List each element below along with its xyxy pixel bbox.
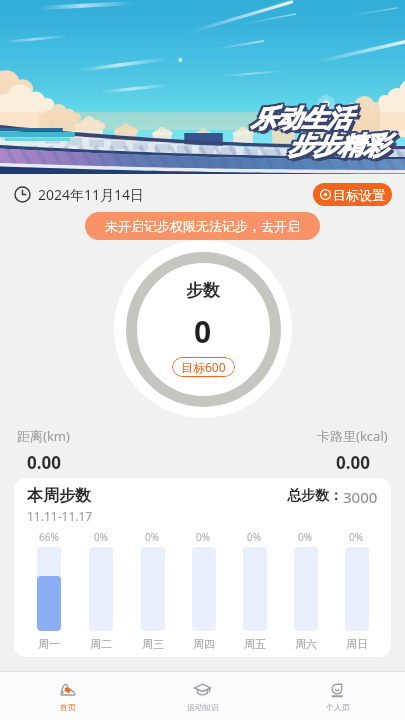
staticText: 周日 [346, 637, 368, 651]
staticText: 0% [349, 530, 364, 544]
staticText: 目标设置 [333, 187, 385, 203]
button[interactable]: 运动知识 [135, 672, 270, 720]
button[interactable]: 目标设置 [313, 183, 392, 206]
staticText: 乐动生活 [253, 106, 353, 137]
button[interactable]: 首页 [0, 672, 135, 720]
staticText: 步数 [186, 280, 220, 301]
staticText: 乐动生活 [249, 105, 349, 136]
staticText: 步步精彩 [290, 133, 390, 164]
staticText: 步步精彩 [286, 128, 386, 159]
staticText: 0% [145, 530, 160, 544]
staticText: 步步精彩 [291, 133, 391, 164]
staticText: 目标600 [181, 359, 226, 375]
button[interactable]: 未开启记步权限无法记步，去开启 [85, 212, 320, 240]
other: 运动知识 [193, 680, 212, 699]
staticText: 周一 [38, 637, 60, 651]
staticText: 周二 [90, 637, 112, 651]
staticText: 乐动生活 [254, 105, 354, 136]
staticText: 步步精彩 [291, 132, 391, 163]
staticText: 本周步数 [27, 486, 91, 506]
button[interactable]: 目标600 [172, 357, 235, 377]
staticText: 首页 [60, 702, 76, 712]
staticText: 乐动生活 [253, 105, 353, 136]
button[interactable]: 个人页 [270, 672, 405, 720]
staticText: 0% [196, 530, 211, 544]
staticText: 步步精彩 [288, 128, 388, 159]
staticText: 未开启记步权限无法记步，去开启 [105, 218, 300, 234]
staticText: 步步精彩 [290, 132, 390, 163]
staticText: 步步精彩 [288, 132, 388, 163]
staticText: 乐动生活 [251, 105, 351, 136]
staticText: 乐动生活 [254, 106, 354, 137]
staticText: 2024年11月14日 [38, 185, 145, 204]
staticText: 0% [94, 530, 109, 544]
staticText: 乐动生活 [251, 101, 351, 132]
staticText: 乐动生活 [251, 103, 351, 134]
staticText: 个人页 [326, 702, 350, 712]
staticText: 0 [194, 311, 212, 352]
staticText: 周六 [295, 637, 317, 651]
staticText: 乐动生活 [249, 103, 349, 134]
staticText: 卡路里(kcal) [317, 427, 388, 445]
staticText: 11.11-11.17 [27, 508, 93, 524]
staticText: 步步精彩 [288, 130, 388, 161]
staticText: 运动知识 [187, 702, 219, 712]
staticText: 周三 [142, 637, 164, 651]
staticText: 乐动生活 [253, 101, 353, 132]
staticText: 3000 [343, 487, 378, 507]
staticText: 总步数： [287, 487, 343, 505]
staticText: 乐动生活 [253, 103, 353, 134]
staticText: 距离(km) [17, 427, 70, 445]
other: 个人页 [328, 680, 347, 699]
staticText: 0% [298, 530, 313, 544]
staticText: 周四 [193, 637, 215, 651]
staticText: 66% [39, 530, 59, 544]
staticText: 步步精彩 [286, 132, 386, 163]
staticText: 0% [247, 530, 262, 544]
staticText: 周五 [244, 637, 266, 651]
staticText: 乐动生活 [249, 101, 349, 132]
staticText: 步步精彩 [290, 130, 390, 161]
other: 首页 [58, 680, 77, 699]
staticText: 步步精彩 [290, 128, 390, 159]
staticText: 步步精彩 [286, 130, 386, 161]
staticText: 0.00 [27, 451, 61, 474]
staticText: 0.00 [336, 451, 370, 474]
